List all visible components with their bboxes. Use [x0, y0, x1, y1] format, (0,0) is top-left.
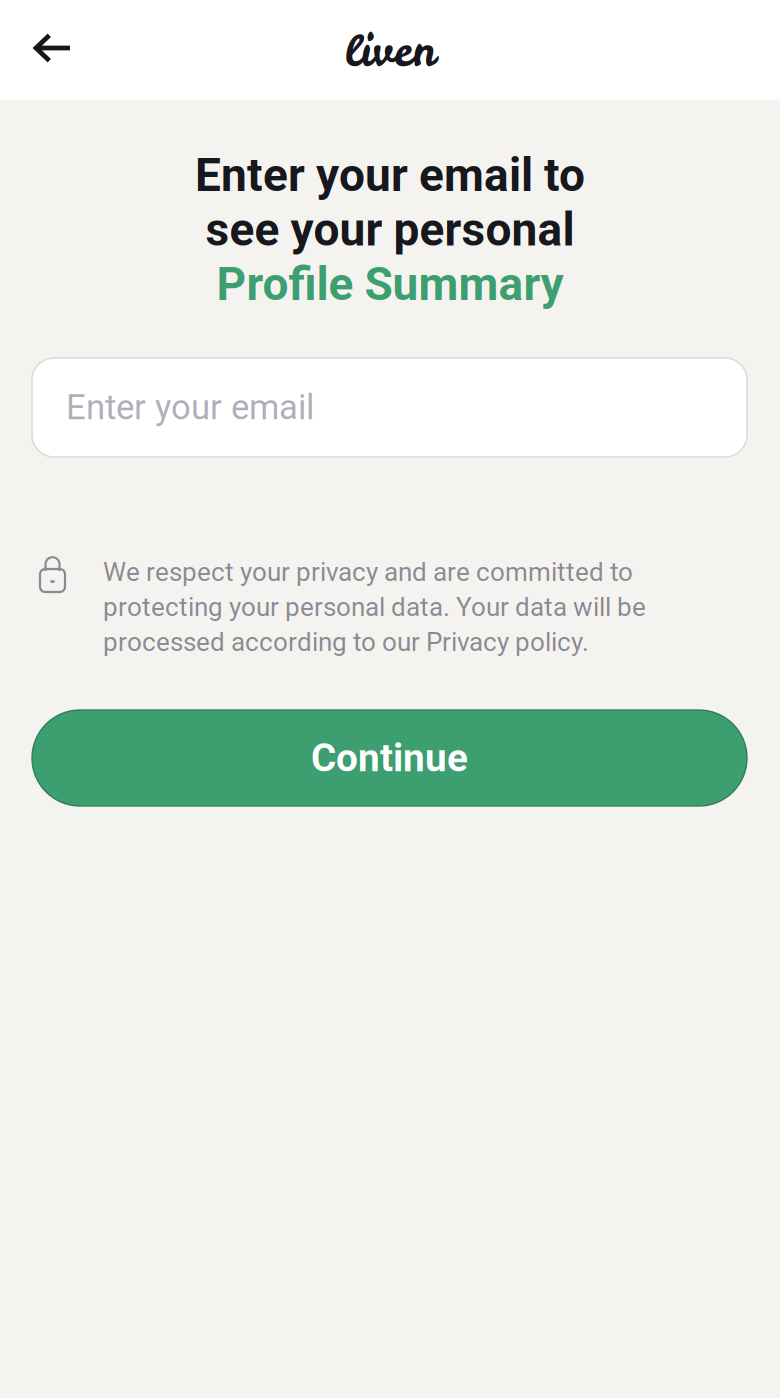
staticText: Profile Summary — [216, 257, 563, 311]
staticText: see your personal — [205, 203, 574, 257]
staticText: Enter your email — [66, 387, 314, 428]
button[interactable]: Continue — [32, 710, 747, 806]
staticText: We respect your privacy and are committe… — [103, 557, 646, 657]
staticText: Continue — [311, 735, 468, 781]
staticText: liven — [344, 22, 435, 80]
button[interactable]: Back — [14, 9, 92, 87]
staticText: Enter your email to — [195, 148, 585, 202]
